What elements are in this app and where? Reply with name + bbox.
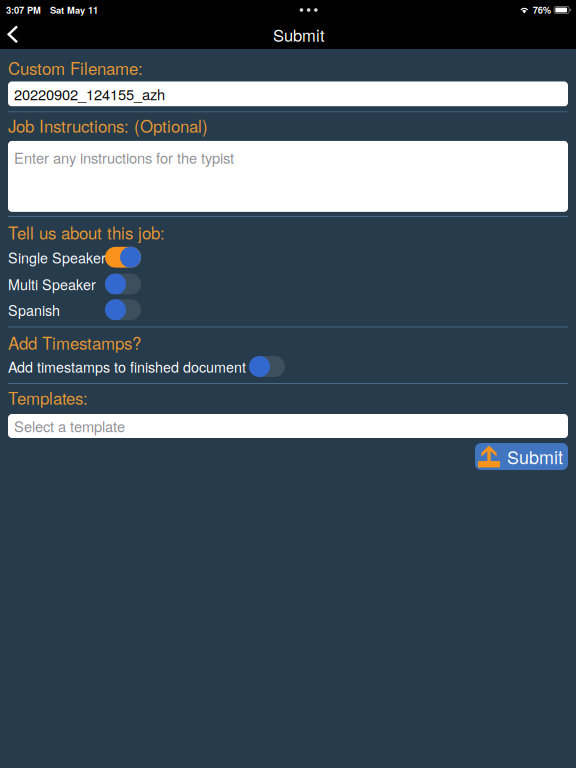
staticText: Templates: <box>8 385 88 410</box>
button[interactable]: Single Speaker <box>105 247 141 268</box>
staticText: Job Instructions: (Optional) <box>8 113 208 138</box>
button[interactable]: Submit <box>475 443 568 470</box>
staticText: 3:07 PM <box>6 3 41 17</box>
button[interactable]: Back <box>0 20 37 49</box>
staticText: Add timestamps to finished document <box>8 356 246 377</box>
staticText: 20220902_124155_azh <box>14 83 165 104</box>
button[interactable]: Spanish <box>105 299 141 320</box>
staticText: Sat May 11 <box>41 3 98 17</box>
staticText: Enter any instructions for the typist <box>14 147 234 168</box>
staticText: Multi Speaker <box>8 274 96 294</box>
button[interactable]: 20220902_124155_azh <box>0 81 576 106</box>
staticText: Spanish <box>8 300 60 320</box>
staticText: Custom Filename: <box>8 56 143 80</box>
staticText: Submit <box>273 23 325 46</box>
staticText: Select a template <box>14 415 125 436</box>
button[interactable]: Select a template <box>0 414 576 438</box>
button[interactable]: Enter any instructions for the typist <box>0 141 576 212</box>
button[interactable]: Add timestamps to finished document <box>249 356 285 377</box>
staticText: Add Timestamps? <box>8 330 141 354</box>
staticText: Single Speaker <box>8 247 106 267</box>
staticText: 76% <box>533 3 551 17</box>
button[interactable]: Multi Speaker <box>105 274 141 295</box>
staticText: Submit <box>507 444 563 469</box>
staticText: Tell us about this job: <box>8 220 165 244</box>
